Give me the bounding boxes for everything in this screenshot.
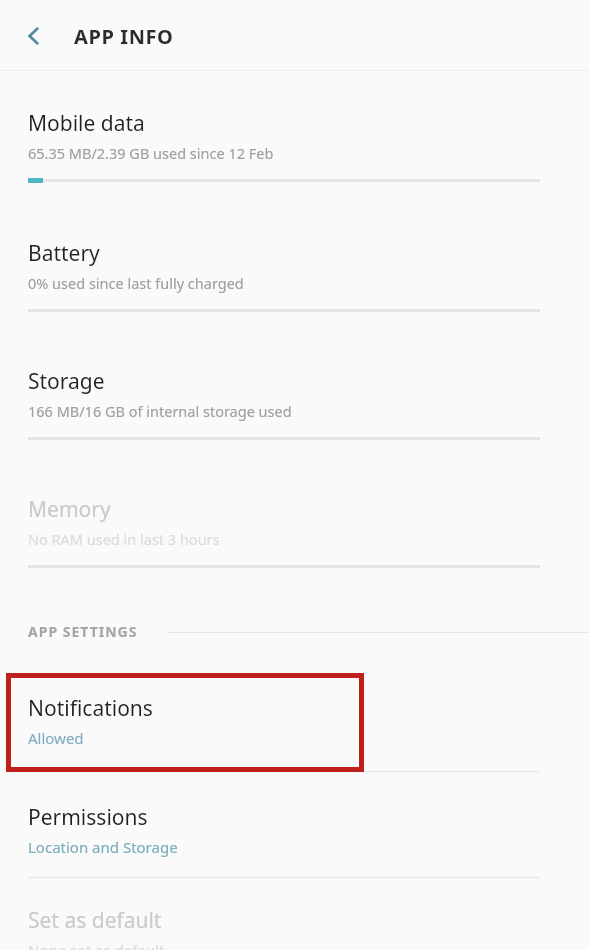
staticText: Storage	[28, 367, 105, 396]
staticText: APP SETTINGS	[28, 622, 138, 641]
staticText: Set as default	[28, 906, 162, 935]
button[interactable]	[0, 676, 589, 771]
staticText: APP INFO	[74, 23, 174, 50]
staticText: None set as default	[28, 940, 165, 950]
button[interactable]	[0, 95, 589, 225]
staticText: Permissions	[28, 803, 148, 832]
staticText: 0% used since last fully charged	[28, 273, 244, 293]
button[interactable]	[0, 785, 589, 877]
button[interactable]	[0, 225, 589, 355]
staticText: 166 MB/16 GB of internal storage used	[28, 401, 292, 421]
staticText: Notifications	[28, 694, 153, 723]
button[interactable]	[0, 353, 589, 483]
staticText: Memory	[28, 495, 111, 524]
staticText: Allowed	[28, 728, 84, 748]
button[interactable]: Navigate up	[10, 12, 58, 60]
staticText: Battery	[28, 239, 100, 268]
staticText: No RAM used in last 3 hours	[28, 529, 220, 549]
staticText: Mobile data	[28, 109, 145, 138]
staticText: 65.35 MB/2.39 GB used since 12 Feb	[28, 143, 274, 163]
button	[0, 481, 589, 611]
staticText: Location and Storage	[28, 837, 178, 857]
